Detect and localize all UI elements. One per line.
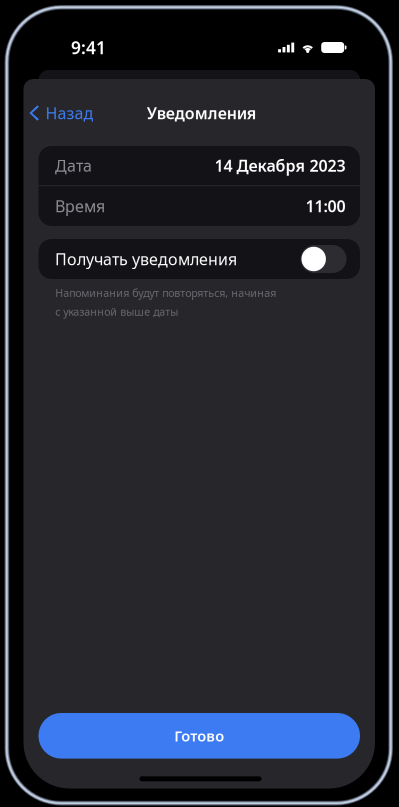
staticText: Дата (55, 155, 92, 176)
button[interactable]: Назад (23, 93, 105, 133)
staticText: 11:00 (305, 195, 345, 217)
button[interactable]: Время (38, 186, 360, 226)
staticText: Напоминания будут повторяться, начиная (55, 286, 276, 300)
staticText: Получать уведомления (55, 248, 237, 270)
staticText: 14 Декабря 2023 (214, 155, 345, 176)
staticText: Готово (174, 726, 224, 746)
staticText: с указанной выше даты (55, 305, 178, 319)
staticText: Уведомления (147, 102, 257, 124)
staticText: Назад (45, 102, 93, 124)
button[interactable]: Дата (38, 146, 360, 185)
staticText: Время (55, 195, 105, 217)
button[interactable]: Получать уведомления (38, 239, 360, 279)
staticText: 9:41 (71, 36, 106, 59)
button[interactable]: Готово (38, 713, 360, 759)
